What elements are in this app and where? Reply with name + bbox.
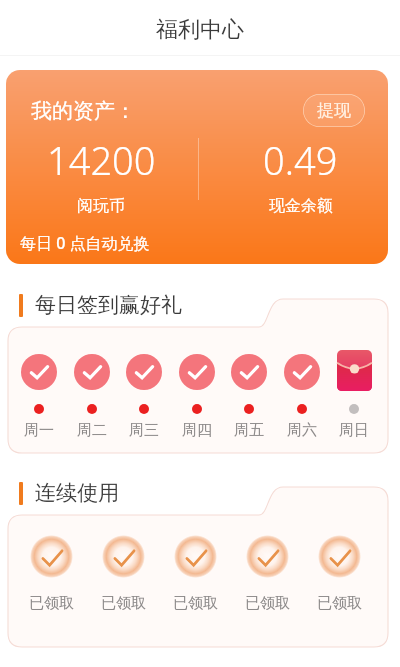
button[interactable]: 连续使用: [19, 480, 400, 507]
staticText: 周四: [182, 421, 212, 440]
staticText: 连续使用: [35, 480, 119, 506]
button[interactable]: 红包: [336, 354, 372, 440]
button[interactable]: 每日签到赢好礼: [19, 292, 400, 319]
button[interactable]: 周三: [126, 354, 162, 440]
button[interactable]: 我的资产：: [6, 70, 388, 264]
staticText: 14200: [47, 134, 156, 186]
staticText: 周日: [339, 421, 369, 440]
other: 红包: [336, 354, 372, 390]
staticText: 0.49: [263, 134, 338, 186]
staticText: 已领取: [317, 594, 362, 613]
staticText: 提现: [317, 100, 351, 121]
staticText: 已领取: [101, 594, 146, 613]
staticText: 已领取: [245, 594, 290, 613]
button[interactable]: 已领取: [317, 535, 362, 613]
staticText: 每日签到赢好礼: [35, 292, 182, 318]
button[interactable]: 已领取: [245, 535, 290, 613]
button[interactable]: 提现: [303, 94, 365, 127]
button[interactable]: 周四: [179, 354, 215, 440]
staticText: 周六: [287, 421, 317, 440]
staticText: 已领取: [173, 594, 218, 613]
staticText: 福利中心: [156, 16, 244, 44]
staticText: 我的资产：: [31, 98, 136, 124]
button[interactable]: 福利中心: [0, 0, 400, 56]
button[interactable]: 周一: [21, 354, 57, 440]
staticText: 每日 0 点自动兑换: [20, 232, 150, 254]
staticText: 阅玩币: [77, 196, 125, 216]
staticText: 周三: [129, 421, 159, 440]
staticText: 周二: [77, 421, 107, 440]
staticText: 已领取: [29, 594, 74, 613]
staticText: 现金余额: [269, 196, 333, 216]
button[interactable]: 已领取: [173, 535, 218, 613]
staticText: 周五: [234, 421, 264, 440]
button[interactable]: 已领取: [29, 535, 74, 613]
staticText: 周一: [24, 421, 54, 440]
button[interactable]: 已领取: [101, 535, 146, 613]
button[interactable]: 周二: [74, 354, 110, 440]
button[interactable]: 周五: [231, 354, 267, 440]
button[interactable]: 周六: [284, 354, 320, 440]
